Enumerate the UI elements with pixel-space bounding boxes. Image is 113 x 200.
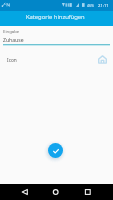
staticText: 21:11 — [98, 3, 109, 9]
staticText: Kategorie hinzufügen — [26, 13, 85, 21]
staticText: Zuhause — [3, 37, 24, 44]
button[interactable]: Icon — [0, 52, 113, 68]
staticText: 46% — [87, 3, 95, 8]
button[interactable]: Speichern — [48, 143, 63, 158]
staticText: Eingabe — [3, 28, 20, 34]
staticText: Icon — [7, 57, 17, 64]
